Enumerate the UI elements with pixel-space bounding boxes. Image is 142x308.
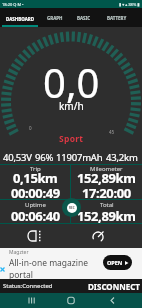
staticText: 18:20 Q M •	[2, 2, 24, 7]
staticText: 40,53V	[3, 151, 32, 164]
button[interactable]: Mileometer	[71, 165, 142, 199]
staticText: Uptime	[25, 201, 46, 209]
staticText: Mileometer	[90, 165, 123, 173]
button[interactable]: GRAPH	[47, 15, 63, 21]
staticText: 00:06:40	[11, 207, 60, 225]
staticText: km/h	[59, 99, 84, 113]
button[interactable]: BATTERY	[107, 15, 127, 21]
staticText: ▮ ▾ ▴ 38% ▮	[119, 2, 140, 7]
button[interactable]: REC	[62, 198, 81, 217]
staticText: 152,89km	[77, 207, 136, 225]
button[interactable]: OPEN	[103, 255, 132, 270]
button[interactable]	[71, 224, 142, 248]
staticText: portal	[9, 269, 33, 279]
button[interactable]: DISCONNECT	[88, 281, 140, 292]
button[interactable]	[0, 224, 71, 248]
button[interactable]: Trip	[0, 165, 70, 199]
button[interactable]: Uptime	[0, 200, 70, 223]
staticText: All-in-one magazine	[9, 257, 89, 269]
staticText: 00:00:49	[11, 184, 60, 202]
staticText: Status:Connected	[3, 282, 53, 290]
staticText: Magzter	[9, 249, 29, 256]
staticText: 45	[109, 129, 115, 135]
staticText: 43,2km	[106, 151, 138, 164]
button[interactable]: Total	[71, 200, 142, 223]
staticText: 96%	[35, 151, 54, 164]
button[interactable]: DASHBOARD	[2, 8, 38, 27]
button[interactable]: BASIC	[77, 15, 91, 21]
staticText: REC	[69, 206, 75, 210]
staticText: 17:20:00	[82, 184, 131, 202]
staticText: 152,89km	[77, 169, 136, 187]
staticText: OPEN	[107, 259, 123, 266]
button[interactable]: Magzter	[0, 248, 142, 279]
staticText: 0	[29, 125, 32, 131]
staticText: 0,0	[43, 55, 100, 109]
staticText: Sport	[59, 133, 84, 145]
staticText: 11907mAh	[56, 151, 103, 164]
staticText: 0,15km	[13, 169, 58, 187]
staticText: Total	[100, 201, 114, 209]
staticText: DASHBOARD	[6, 16, 35, 22]
staticText: Trip	[30, 165, 41, 173]
